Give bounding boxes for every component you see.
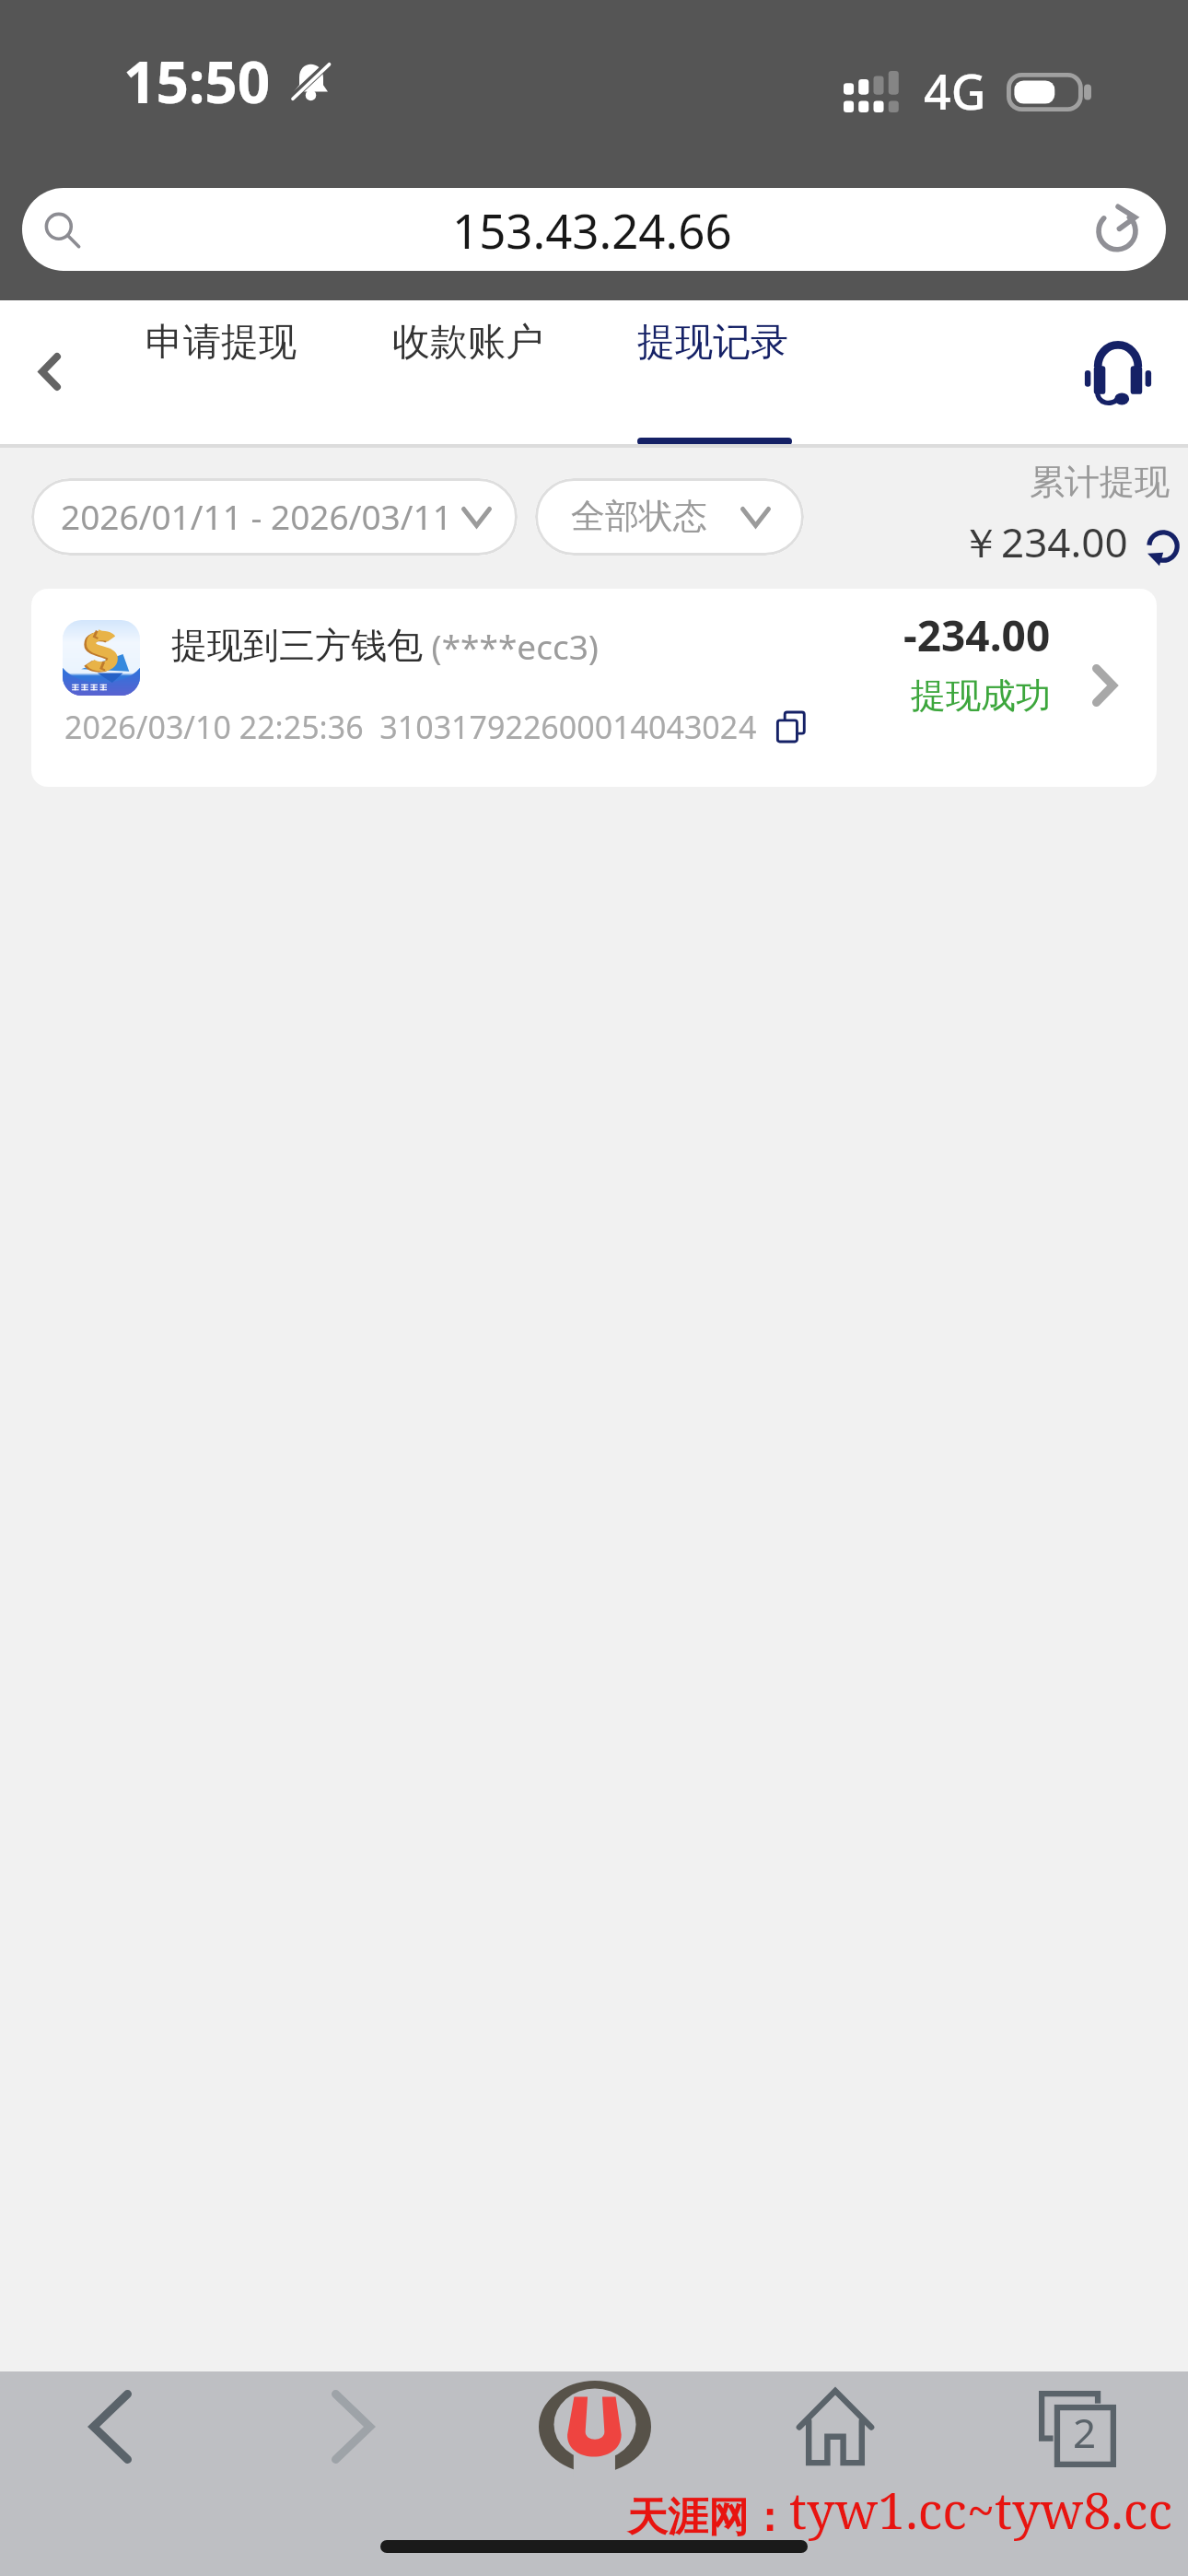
staticText: 提现到三方钱包 <box>171 622 423 670</box>
staticText: 天涯网： <box>627 2494 789 2544</box>
button[interactable]: 提现到三方钱包 <box>31 589 1157 787</box>
staticText: -234.00 <box>903 616 1051 661</box>
staticText: 4G <box>924 58 986 123</box>
staticText: tyw1.cc~tyw8.cc <box>789 2476 1172 2544</box>
button[interactable]: ￥234.00 <box>961 521 1182 569</box>
button[interactable]: 提现记录 <box>637 313 792 445</box>
button[interactable]: 全部状态 <box>535 478 804 556</box>
staticText: 2026/01/11 - 2026/03/11 <box>61 494 452 540</box>
staticText: 全部状态 <box>571 494 707 540</box>
button[interactable]: Menu <box>539 2381 651 2473</box>
staticText: 收款账户 <box>392 313 543 369</box>
button[interactable]: Forward <box>295 2372 411 2481</box>
staticText: 2026/03/10 22:25:36 31031792260001404302 <box>64 706 739 748</box>
other: Search <box>43 211 82 250</box>
staticText: 2 <box>1073 2415 1097 2457</box>
button[interactable]: Search <box>22 188 1166 271</box>
staticText: 4 <box>739 706 757 748</box>
staticText: 提现记录 <box>637 313 788 369</box>
other: Refresh <box>1145 528 1182 565</box>
staticText: 累计提现 <box>1030 458 1170 506</box>
button[interactable]: Customer service <box>1083 339 1153 402</box>
staticText: 153.43.24.66 <box>452 198 732 262</box>
staticText: 申请提现 <box>146 313 297 369</box>
button[interactable]: Back <box>39 353 61 391</box>
button[interactable]: Home <box>784 2375 887 2478</box>
staticText: ￥234.00 <box>961 521 1128 569</box>
staticText: (****ecc3) <box>423 622 599 670</box>
button[interactable]: Copy <box>775 711 807 743</box>
staticText: 15:50 <box>123 42 271 120</box>
other: Reload <box>1092 203 1142 252</box>
button[interactable]: 申请提现 <box>146 313 297 369</box>
staticText: 提现成功 <box>911 679 1051 718</box>
button[interactable]: 2026/01/11 - 2026/03/11 <box>31 478 518 556</box>
button[interactable]: 收款账户 <box>392 313 543 369</box>
button[interactable]: Back <box>52 2372 169 2481</box>
button[interactable]: Tabs <box>1039 2391 1116 2467</box>
